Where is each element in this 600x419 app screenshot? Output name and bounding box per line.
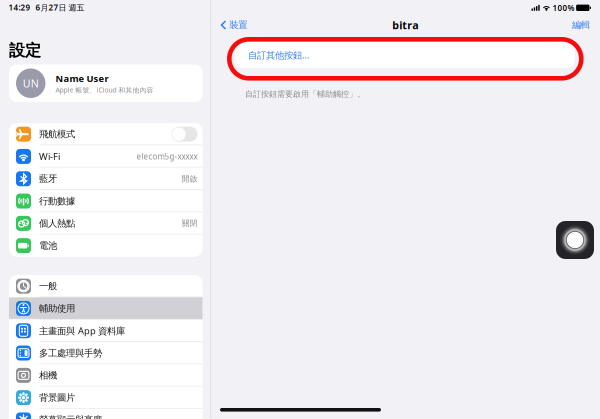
button[interactable]: 裝置 [210, 16, 247, 34]
staticText: 自訂其他按鈕… [248, 49, 309, 61]
staticText: 飛航模式 [39, 128, 75, 140]
staticText: 關閉 [181, 218, 197, 228]
staticText: 個人熱點 [39, 218, 75, 229]
staticText: 電池 [39, 240, 57, 251]
staticText: 背景圖片 [39, 392, 75, 403]
staticText: 一般 [39, 280, 57, 292]
button[interactable]: 電池 [9, 234, 202, 257]
staticText: 相機 [39, 370, 57, 381]
staticText: Wi-Fi [39, 150, 60, 163]
staticText: 自訂按鈕需要啟用「輔助觸控」。 [245, 89, 365, 99]
staticText: 設定 [9, 41, 41, 60]
staticText: 100% [552, 2, 574, 13]
button[interactable]: 相機 [9, 364, 202, 386]
button[interactable]: 飛航模式 [9, 123, 202, 145]
button[interactable]: 螢幕顯示與亮度 [9, 409, 202, 419]
button[interactable]: 主畫面與 App 資料庫 [9, 320, 202, 342]
staticText: 輔助使用 [39, 303, 75, 314]
staticText: bitra [392, 18, 418, 32]
staticText: 行動數據 [39, 195, 75, 207]
button[interactable]: 編輯 [572, 16, 600, 34]
button[interactable]: 輔助使用 [9, 297, 202, 320]
button[interactable]: 藍牙 [9, 168, 202, 190]
button[interactable]: 一般 [9, 275, 202, 297]
staticText: 編輯 [572, 19, 590, 31]
staticText: Name User [55, 72, 108, 84]
button[interactable]: 個人熱點 [9, 212, 202, 234]
staticText: 螢幕顯示與亮度 [39, 414, 102, 419]
staticText: 主畫面與 App 資料庫 [39, 325, 125, 337]
button[interactable]: AssistiveTouch [556, 221, 594, 259]
button[interactable]: UN [9, 64, 202, 102]
staticText: 6月27日 週五 [35, 2, 84, 13]
button[interactable]: 行動數據 [9, 190, 202, 212]
staticText: 藍牙 [39, 173, 57, 184]
staticText: 裝置 [229, 19, 247, 31]
staticText: elecom5g-xxxxx [136, 151, 197, 162]
staticText: UN [23, 76, 39, 90]
staticText: 多工處理與手勢 [39, 347, 102, 359]
button[interactable]: 自訂其他按鈕… [235, 42, 575, 68]
button[interactable]: 背景圖片 [9, 386, 202, 409]
button[interactable]: 多工處理與手勢 [9, 342, 202, 364]
staticText: 14:29 [8, 2, 30, 13]
staticText: 開啟 [181, 174, 197, 184]
button[interactable]: Wi-Fi [9, 145, 202, 168]
staticText: Apple 帳號、iCloud 和其他內容 [55, 85, 153, 94]
